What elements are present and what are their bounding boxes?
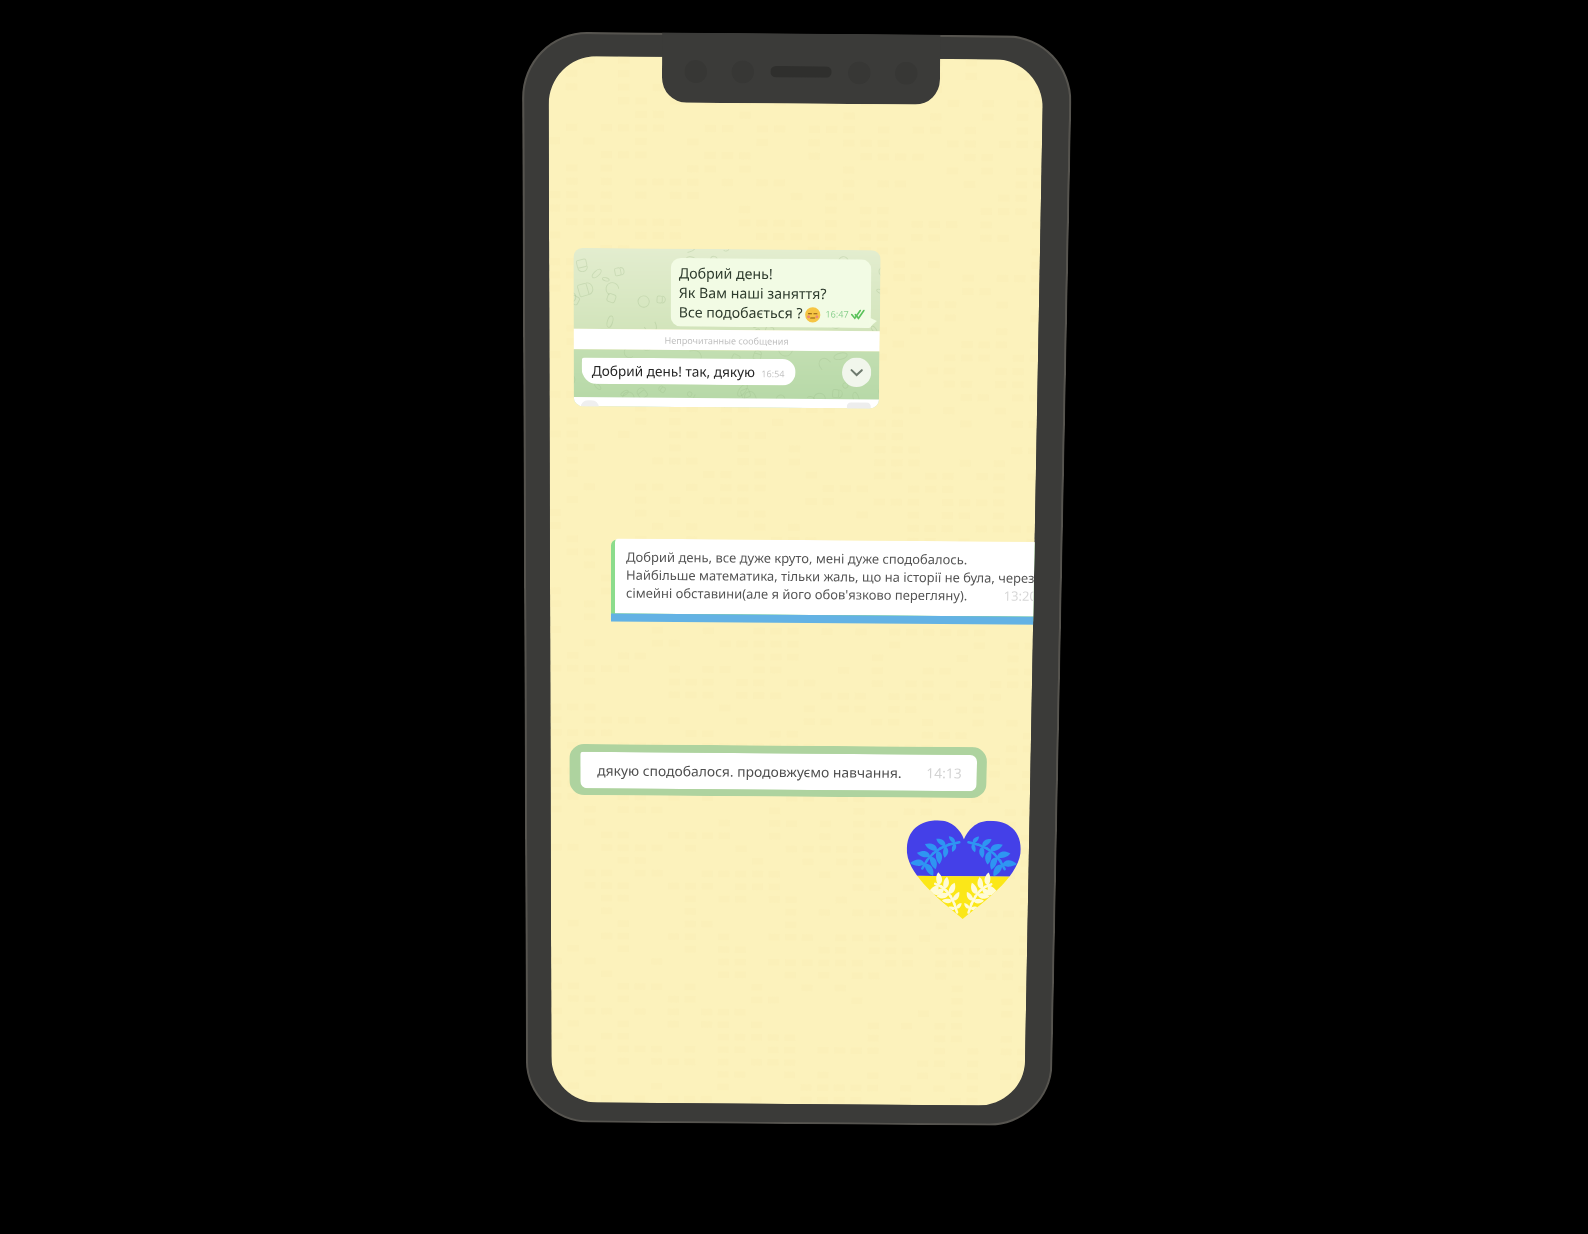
staticText: сімейні обставини(але я його обов'язково… <box>626 584 968 604</box>
staticText: Як Вам наші заняття? <box>679 282 827 303</box>
staticText: Найбільше математика, тільки жаль, що на… <box>626 566 1034 587</box>
button[interactable]: Ukraine heart sticker <box>905 820 1021 919</box>
staticText: 14:13 <box>926 763 962 782</box>
staticText: 16:47 <box>825 307 850 320</box>
staticText: 13:20 <box>1003 587 1034 605</box>
staticText: Непрочитанные сообщения <box>664 334 789 347</box>
staticText: 16:54 <box>761 367 786 379</box>
staticText: Все подобається ? <box>679 302 803 322</box>
button[interactable]: Scroll to bottom <box>842 357 871 387</box>
staticText: Добрий день, все дуже круто, мені дуже с… <box>626 548 968 568</box>
staticText: Добрий день! так, дякую <box>592 361 755 381</box>
button[interactable]: Добрий день! <box>573 248 881 408</box>
button[interactable]: дякую сподобалося. продовжуємо навчання. <box>569 744 987 798</box>
staticText: дякую сподобалося. продовжуємо навчання. <box>597 761 903 782</box>
button[interactable]: Добрий день, все дуже круто, мені дуже с… <box>611 538 1035 625</box>
staticText: Добрий день! <box>679 263 773 283</box>
